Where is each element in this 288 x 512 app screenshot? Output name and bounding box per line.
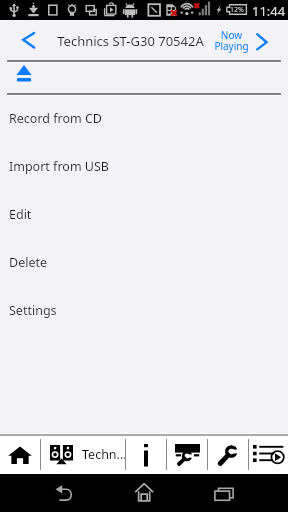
staticText: Techn... xyxy=(82,446,125,463)
button[interactable]: Back xyxy=(12,24,44,56)
button[interactable]: Settings xyxy=(208,436,248,474)
button[interactable]: Device xyxy=(167,436,207,474)
button[interactable]: Home xyxy=(0,436,40,474)
button[interactable]: Info xyxy=(126,436,166,474)
staticText: Now Playing xyxy=(214,28,249,53)
button[interactable]: Eject xyxy=(0,59,288,93)
button[interactable]: Record from CD xyxy=(0,94,288,142)
button[interactable]: Playlist xyxy=(249,436,288,474)
staticText: Import from USB xyxy=(9,158,109,175)
button[interactable]: Techn... xyxy=(41,436,125,474)
button[interactable]: Recents xyxy=(206,480,242,506)
staticText: Edit xyxy=(9,206,32,223)
staticText: Settings xyxy=(9,302,57,319)
button[interactable]: Import from USB xyxy=(0,142,288,190)
button[interactable]: Back xyxy=(46,480,82,506)
button[interactable]: Delete xyxy=(0,238,288,286)
staticText: Delete xyxy=(9,254,48,271)
staticText: 12% xyxy=(230,5,244,15)
staticText: Record from CD xyxy=(9,110,102,127)
button[interactable]: Now Playing xyxy=(214,24,273,56)
button[interactable]: Home xyxy=(126,480,162,506)
staticText: Technics ST-G30 70542A xyxy=(0,32,261,50)
button[interactable]: Edit xyxy=(0,190,288,238)
button[interactable]: Settings xyxy=(0,286,288,334)
staticText: 11:44 xyxy=(252,2,286,20)
